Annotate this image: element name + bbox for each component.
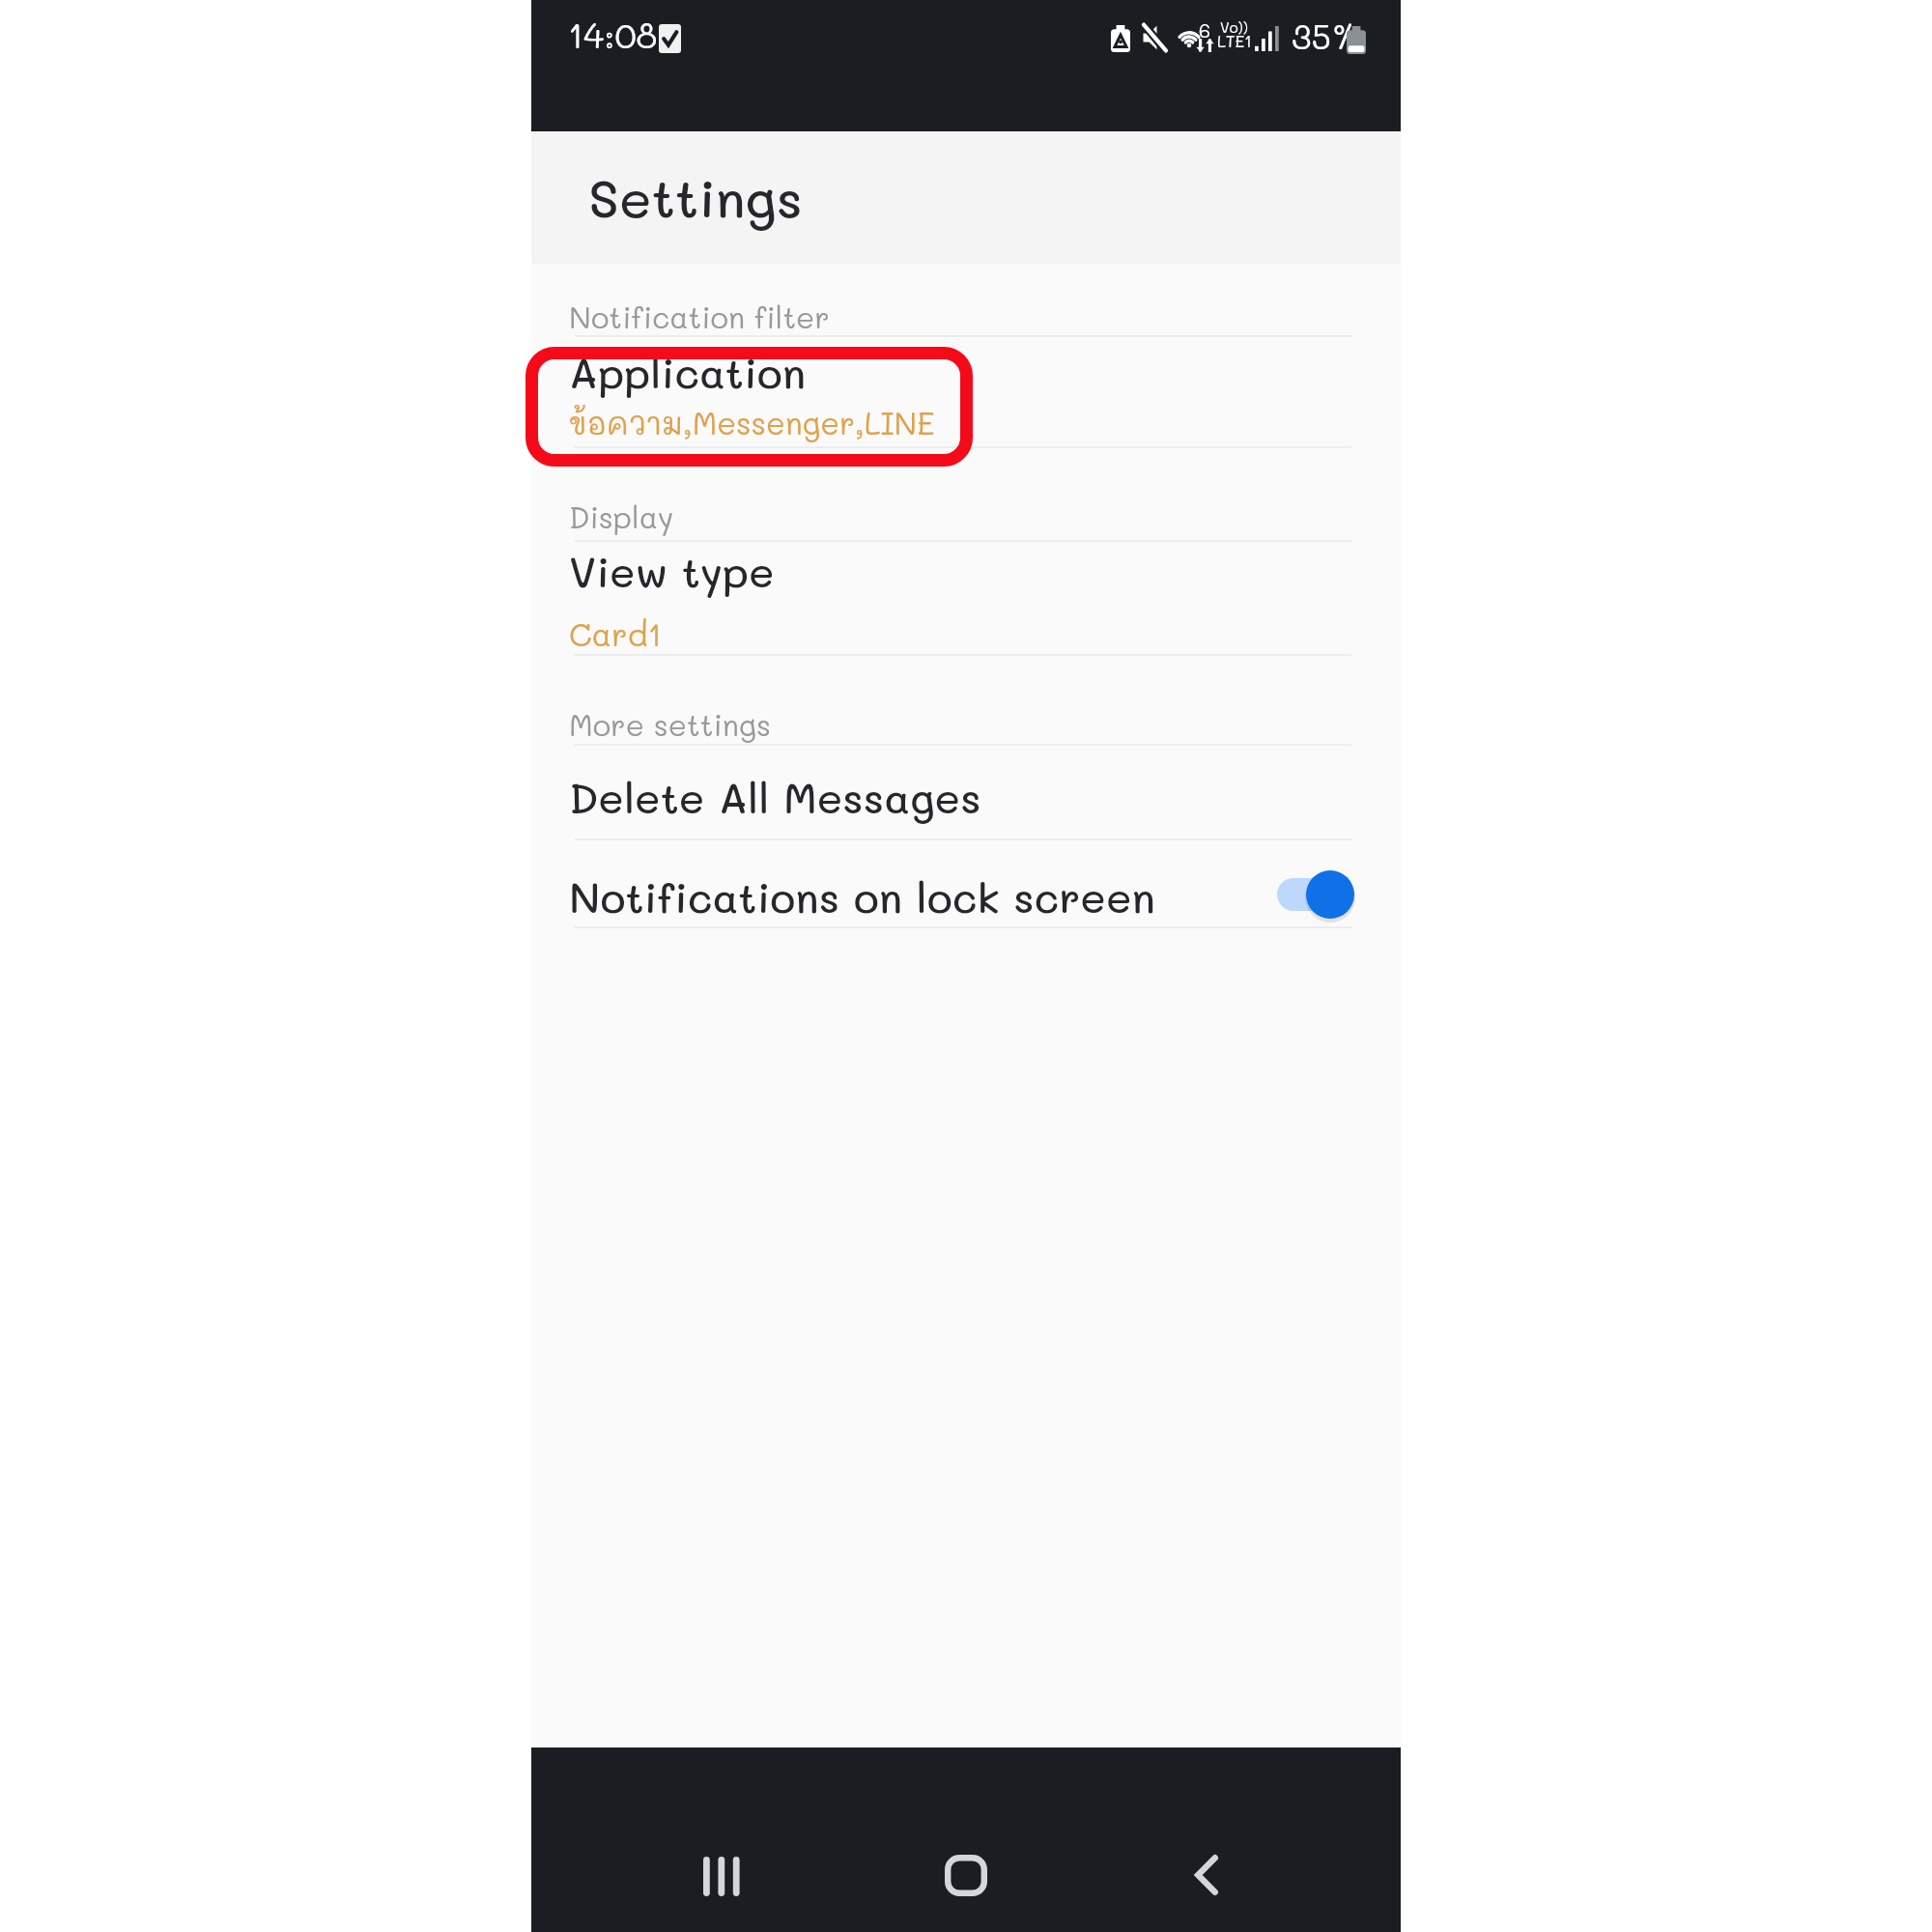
staticText: LTE1 [1217, 30, 1252, 51]
staticText: 14:08 [568, 12, 658, 57]
staticText: View type [569, 543, 775, 598]
staticText: ข้อความ,Messenger,LINE [569, 402, 935, 442]
staticText: Settings [588, 162, 803, 231]
staticText: Vo)) [1220, 17, 1248, 36]
staticText: Delete All Messages [569, 769, 981, 824]
button[interactable]: Application [531, 335, 1401, 446]
staticText: 35% [1292, 14, 1360, 58]
staticText: 6 [1199, 17, 1211, 43]
button[interactable]: View type [531, 540, 1401, 654]
button[interactable]: Delete All Messages [531, 744, 1401, 838]
staticText: Notification filter [569, 297, 830, 335]
staticText: More settings [569, 704, 772, 743]
staticText: Card1 [569, 612, 663, 654]
staticText: Notifications on lock screen [569, 868, 1155, 923]
staticText: Display [569, 497, 674, 535]
button[interactable]: Recent apps [676, 1822, 769, 1930]
button[interactable]: Back [1160, 1821, 1253, 1929]
staticText: Application [569, 344, 807, 399]
button[interactable]: Notifications on lock screen [531, 838, 1401, 926]
button[interactable]: Home [920, 1821, 1012, 1929]
